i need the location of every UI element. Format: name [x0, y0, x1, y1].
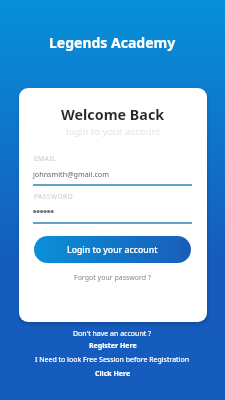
- staticText: PASSWORD: [34, 192, 73, 201]
- staticText: johnsmith@gmail.com: [33, 169, 109, 179]
- button[interactable]: Login to your account: [34, 236, 191, 263]
- button[interactable]: Forgot your password ?: [74, 273, 152, 283]
- staticText: Register Here: [89, 341, 137, 351]
- staticText: Forgot your password ?: [74, 273, 152, 283]
- staticText: I Need to look Free Session before Regis…: [35, 355, 190, 365]
- staticText: Login to your account: [67, 244, 158, 256]
- button[interactable]: Click Here: [95, 369, 131, 379]
- staticText: EMAIL: [34, 154, 56, 163]
- staticText: Legends Academy: [49, 33, 176, 52]
- staticText: Welcome Back: [61, 105, 165, 124]
- staticText: Don't have an account ?: [73, 329, 152, 339]
- button[interactable]: Register Here: [89, 341, 137, 351]
- staticText: Click Here: [95, 369, 131, 379]
- staticText: login to your account: [66, 125, 161, 138]
